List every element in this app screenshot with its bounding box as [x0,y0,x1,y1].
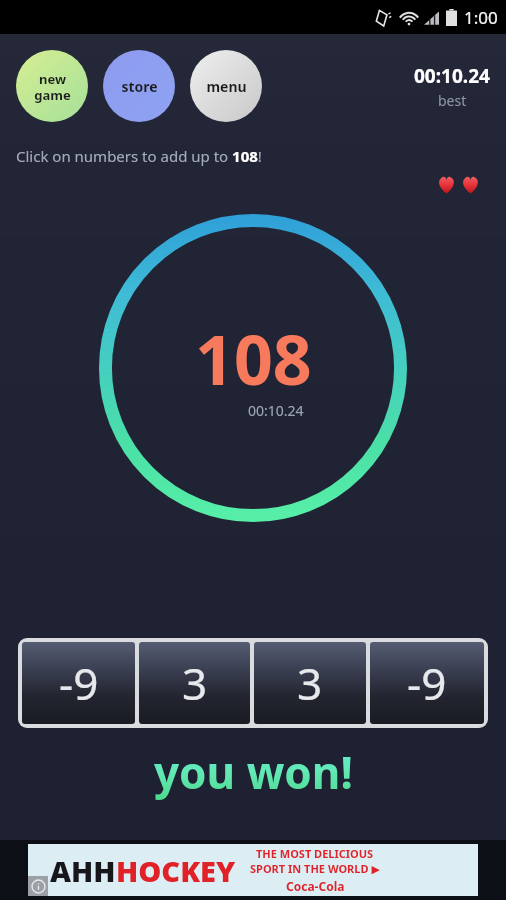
staticText: you won! [154,742,353,802]
staticText: -9 [407,653,447,713]
other: Life [437,175,456,194]
button[interactable]: store [103,50,175,122]
staticText: THE MOST DELICIOUS [256,846,374,861]
staticText: SPORT IN THE WORLD ▶ [250,861,380,876]
staticText: Coca-Cola [286,878,345,894]
staticText: 108 [195,312,312,405]
staticText: 3 [297,653,323,713]
staticText: -9 [59,653,99,713]
button[interactable]: 3 [137,642,252,724]
staticText: menu [206,77,247,96]
staticText: new game [34,70,71,103]
button[interactable]: -9 [22,642,137,724]
staticText: best [438,91,467,110]
button[interactable]: new game [16,50,88,122]
button[interactable]: AHH [28,844,478,896]
staticText: HOCKEY [116,851,236,890]
button[interactable]: 3 [252,642,368,724]
button[interactable]: menu [190,50,262,122]
staticText: 00:10.24 [248,401,304,420]
staticText: AHH [50,851,116,890]
staticText: Click on numbers to add up to 108! [16,146,262,166]
staticText: 1:00 [464,6,498,29]
button[interactable]: -9 [368,642,484,724]
staticText: 3 [182,653,208,713]
staticText: store [121,77,158,96]
staticText: 00:10.24 [414,63,490,89]
other: Life [461,175,480,194]
